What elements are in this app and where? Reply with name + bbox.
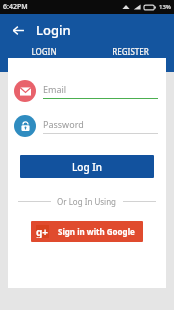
staticText: Login [36, 21, 71, 39]
staticText: LOGIN [31, 46, 57, 57]
staticText: 6:42PM [3, 2, 28, 12]
button[interactable]: Back [6, 18, 30, 42]
staticText: Email [43, 83, 67, 95]
button[interactable]: g+ [31, 221, 143, 242]
staticText: Or Log In Using [57, 196, 117, 207]
staticText: Password [43, 118, 84, 130]
staticText: Sign in with Google [58, 226, 135, 237]
staticText: REGISTER [112, 46, 149, 57]
button[interactable]: Log In [20, 155, 154, 178]
staticText: g+ [36, 225, 49, 238]
staticText: Log In [72, 160, 103, 174]
button[interactable]: REGISTER [87, 46, 174, 57]
button[interactable]: LOGIN [0, 46, 87, 57]
staticText: 13% [159, 3, 171, 11]
